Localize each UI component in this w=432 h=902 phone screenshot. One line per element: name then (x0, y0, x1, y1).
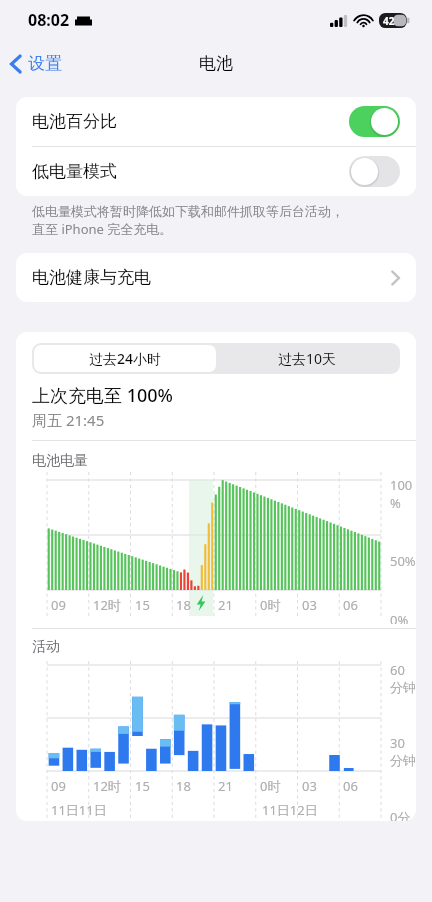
button[interactable]: 过去24小时 (34, 345, 216, 372)
button[interactable]: 电池健康与充电 (16, 253, 416, 302)
staticText: 活动 (32, 638, 60, 656)
staticText: 电池 (199, 53, 233, 74)
staticText: 15 (135, 777, 169, 795)
staticText: 低电量模式将暂时降低如下载和邮件抓取等后台活动， 直至 iPhone 完全充电。 (32, 203, 344, 238)
staticText: 60分钟 (390, 661, 416, 696)
staticText: 电池百分比 (32, 111, 117, 132)
staticText: 11日12日 (262, 801, 318, 819)
staticText: 上次充电至 100% (32, 383, 173, 408)
button[interactable]: 设置 (0, 47, 74, 80)
staticText: 21 (218, 596, 252, 614)
button[interactable]: 低电量模式 (16, 147, 416, 196)
staticText: 0时 (260, 596, 294, 614)
staticText: 42 (383, 14, 395, 28)
staticText: 09 (51, 777, 85, 795)
button[interactable]: 电池百分比 已开启 (349, 106, 400, 137)
staticText: 低电量模式 (32, 161, 117, 182)
staticText: 03 (302, 596, 336, 614)
staticText: 50% (390, 552, 416, 570)
staticText: 电池健康与充电 (32, 267, 151, 288)
staticText: 周五 21:45 (32, 410, 105, 430)
staticText: 12时 (93, 596, 127, 614)
staticText: 09 (51, 596, 85, 614)
staticText: 21 (218, 777, 252, 795)
staticText: 过去24小时 (89, 349, 162, 368)
staticText: 过去10天 (278, 349, 337, 368)
button[interactable]: 过去10天 (216, 345, 398, 372)
staticText: 0时 (260, 777, 294, 795)
button[interactable]: 电池百分比 (16, 97, 416, 146)
staticText: 03 (302, 777, 336, 795)
staticText: 08:02 (28, 9, 70, 31)
button[interactable]: 低电量模式 已关闭 (349, 156, 400, 187)
staticText: 0% (390, 611, 409, 624)
staticText: 06 (343, 777, 377, 795)
staticText: 11日11日 (51, 801, 107, 819)
staticText: 15 (135, 596, 169, 614)
staticText: 0分钟 (390, 808, 416, 821)
staticText: 30分钟 (390, 734, 416, 769)
staticText: 06 (343, 596, 377, 614)
staticText: 设置 (28, 53, 62, 74)
staticText: 18 (176, 777, 210, 795)
staticText: 100% (390, 476, 416, 512)
staticText: 18 (176, 596, 210, 614)
staticText: 电池电量 (32, 452, 88, 470)
staticText: 12时 (93, 777, 127, 795)
